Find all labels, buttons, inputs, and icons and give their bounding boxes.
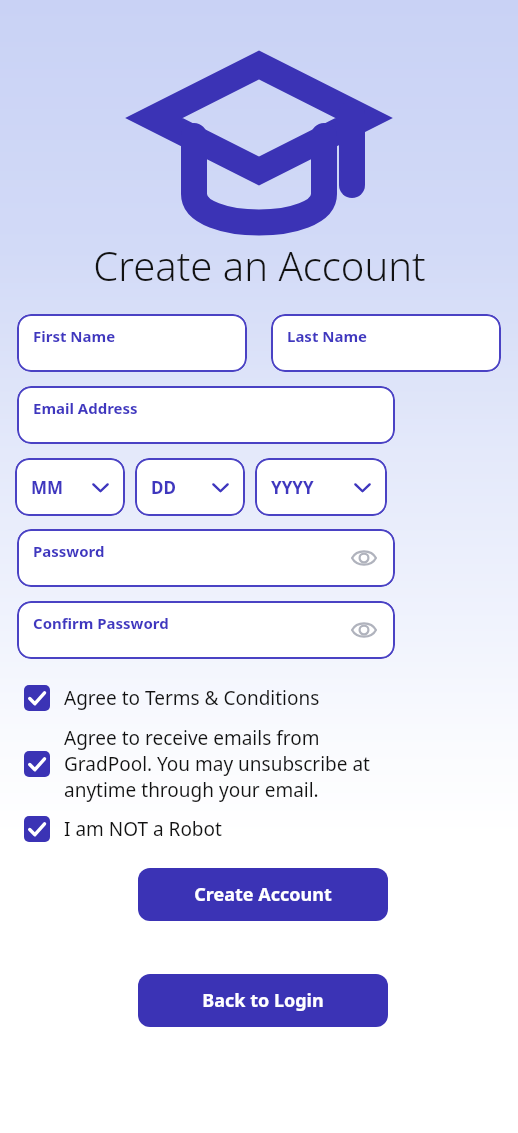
button[interactable]: YYYY — [255, 458, 387, 516]
button[interactable]: I am NOT a Robot — [24, 816, 494, 842]
staticText: GradPool. You may unsubscribe at — [64, 751, 370, 777]
button[interactable]: Last Name — [271, 314, 501, 372]
button[interactable]: Email Address — [17, 386, 395, 444]
staticText: Last Name — [287, 326, 368, 346]
button[interactable]: Create Account — [138, 868, 388, 921]
staticText: Confirm Password — [33, 613, 169, 633]
staticText: Agree to receive emails from — [64, 725, 320, 751]
staticText: Create Account — [194, 882, 332, 907]
staticText: Email Address — [33, 398, 138, 418]
button[interactable]: MM — [15, 458, 125, 516]
staticText: MM — [31, 476, 64, 499]
staticText: Create an Account — [93, 238, 426, 292]
button[interactable]: Back to Login — [138, 974, 388, 1027]
button[interactable]: DD — [135, 458, 245, 516]
button[interactable]: First Name — [17, 314, 247, 372]
staticText: anytime through your email. — [64, 777, 319, 803]
staticText: Password — [33, 541, 105, 561]
button[interactable]: Agree to Terms & Conditions — [24, 685, 494, 711]
staticText: Back to Login — [202, 988, 324, 1013]
button[interactable]: Password — [17, 529, 395, 587]
staticText: YYYY — [271, 476, 314, 499]
button[interactable]: Agree to receive emails from — [24, 725, 494, 803]
button[interactable]: Show password — [349, 615, 379, 645]
staticText: First Name — [33, 326, 116, 346]
button[interactable]: Confirm Password — [17, 601, 395, 659]
staticText: DD — [151, 476, 176, 499]
staticText: Agree to Terms & Conditions — [64, 685, 320, 711]
other: GradPool logo — [147, 58, 371, 222]
button[interactable]: Show password — [349, 543, 379, 573]
staticText: I am NOT a Robot — [64, 816, 222, 842]
